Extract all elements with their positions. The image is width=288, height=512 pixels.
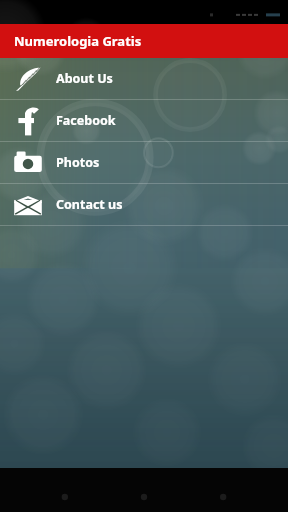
button[interactable]: About Us — [0, 58, 288, 99]
staticText: Photos — [56, 154, 100, 171]
button[interactable]: Facebook — [0, 100, 288, 141]
staticText: About Us — [56, 70, 113, 87]
button[interactable]: Contact us — [0, 184, 288, 225]
staticText: Facebook — [56, 112, 116, 129]
staticText: Contact us — [56, 196, 123, 213]
staticText: Numerologia Gratis — [14, 32, 142, 50]
button[interactable]: Photos — [0, 142, 288, 183]
